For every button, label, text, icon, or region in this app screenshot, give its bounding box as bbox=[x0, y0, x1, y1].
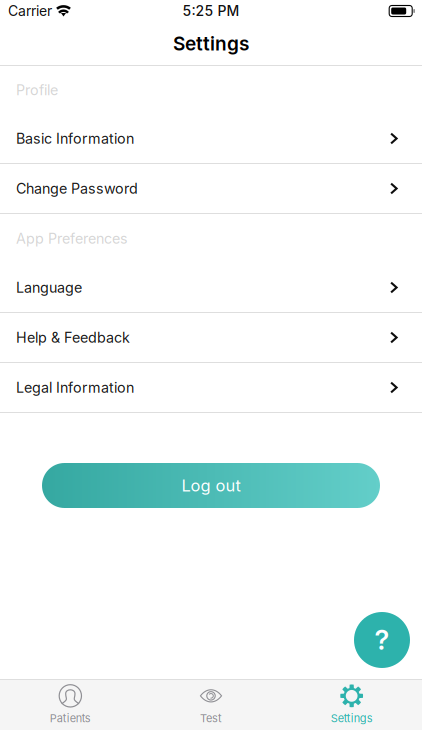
staticText: Language bbox=[16, 279, 82, 296]
button[interactable]: Log out bbox=[42, 463, 380, 508]
staticText: App Preferences bbox=[16, 230, 128, 247]
staticText: Carrier bbox=[8, 2, 52, 19]
staticText: ? bbox=[374, 624, 389, 656]
button[interactable]: Basic Information bbox=[0, 114, 422, 163]
button[interactable]: Change Password bbox=[0, 164, 422, 213]
button[interactable]: Legal Information bbox=[0, 363, 422, 412]
staticText: 5:25 PM bbox=[182, 2, 239, 19]
staticText: Basic Information bbox=[16, 130, 134, 147]
staticText: Settings bbox=[331, 712, 373, 725]
button[interactable]: Settings bbox=[281, 680, 422, 730]
staticText: Log out bbox=[181, 475, 240, 495]
button[interactable]: Help & Feedback bbox=[0, 313, 422, 362]
button[interactable]: Test bbox=[141, 680, 281, 730]
staticText: Patients bbox=[50, 712, 91, 725]
button[interactable]: Help bbox=[354, 612, 410, 668]
staticText: Help & Feedback bbox=[16, 329, 130, 346]
staticText: Legal Information bbox=[16, 379, 134, 396]
staticText: Profile bbox=[16, 81, 58, 99]
staticText: Change Password bbox=[16, 180, 138, 197]
staticText: Test bbox=[200, 712, 222, 725]
button[interactable]: Patients bbox=[0, 680, 141, 730]
button[interactable]: Language bbox=[0, 263, 422, 312]
staticText: Settings bbox=[173, 32, 249, 55]
